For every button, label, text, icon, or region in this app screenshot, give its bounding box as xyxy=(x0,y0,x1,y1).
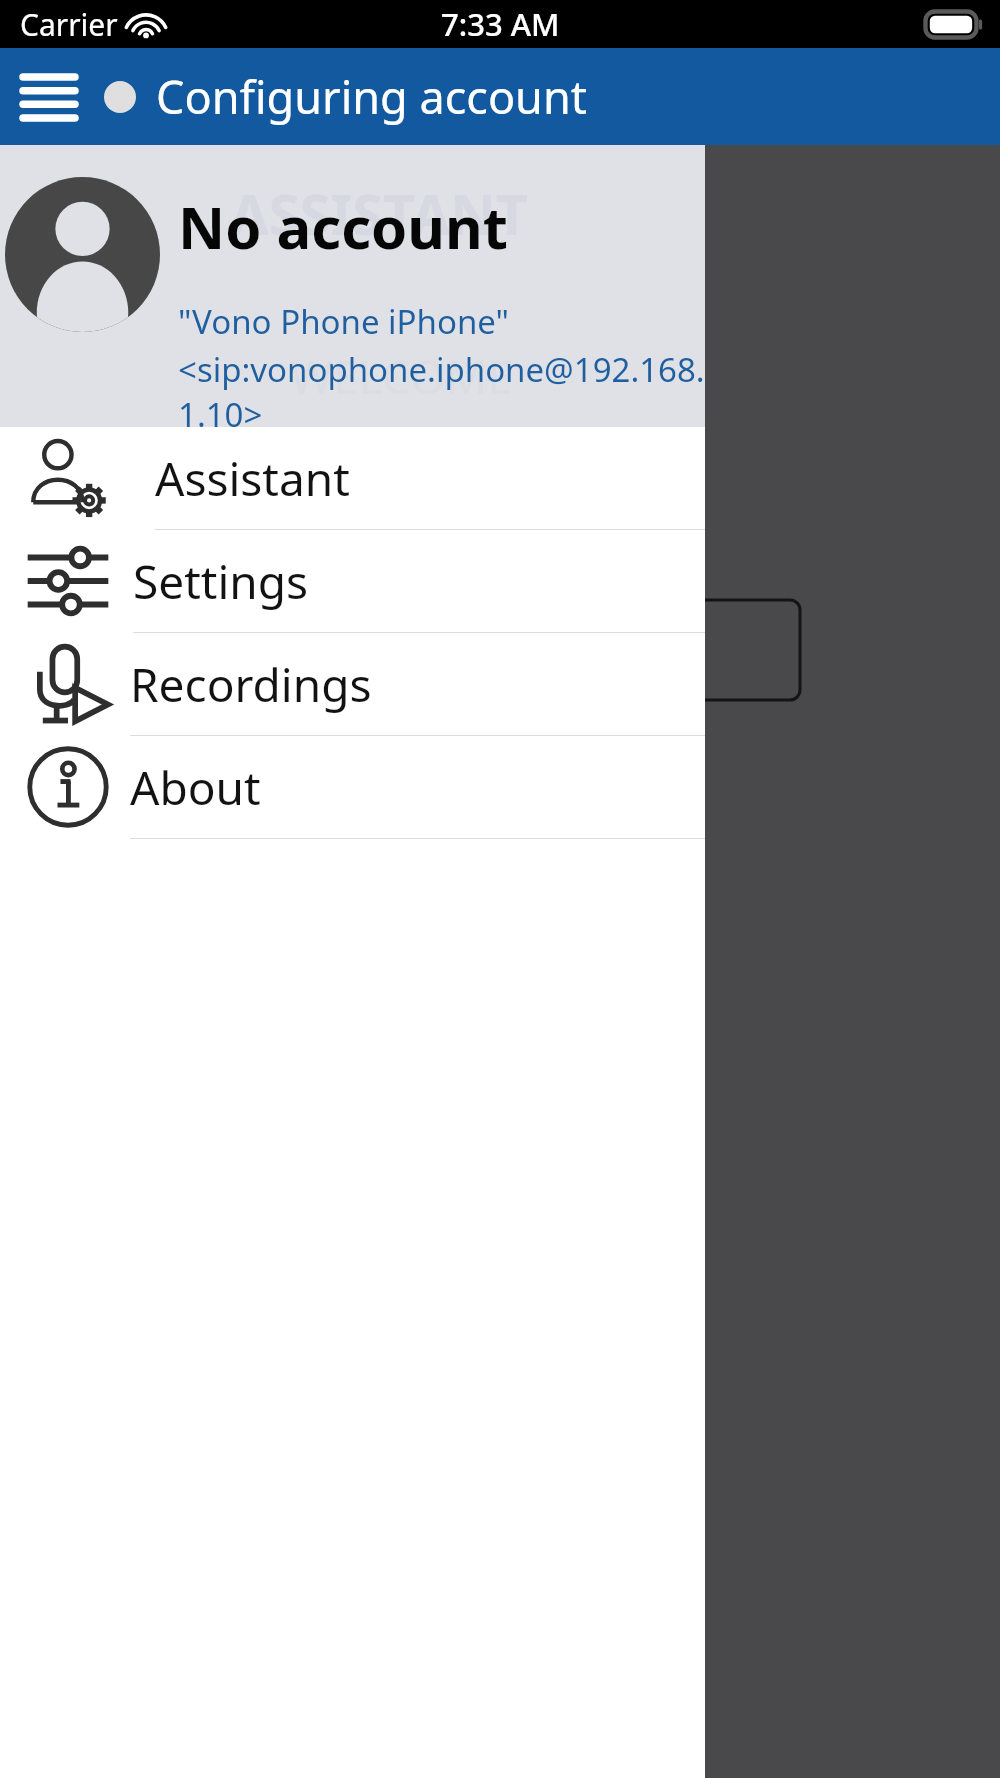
staticText: Tap assistant below to use xyxy=(190,425,559,466)
button[interactable]: Open navigation menu xyxy=(14,62,84,132)
staticText: Recordings xyxy=(130,653,372,716)
staticText: Assistant xyxy=(155,447,350,510)
staticText: <sip:vonophone.iphone@192.168.1.10> xyxy=(178,347,705,427)
staticText: ASSISTANT xyxy=(230,175,529,251)
staticText: About xyxy=(130,756,261,819)
staticText: Configuring account xyxy=(156,66,587,127)
staticText: Settings xyxy=(133,550,309,613)
staticText: WELCOME xyxy=(290,345,513,408)
staticText: WELCOME xyxy=(290,345,513,408)
staticText: No account xyxy=(178,187,508,266)
staticText: Carrier xyxy=(20,4,118,45)
button[interactable]: Settings xyxy=(0,530,705,633)
button[interactable]: About xyxy=(0,736,705,839)
staticText: "Vono Phone iPhone" xyxy=(178,299,510,344)
staticText: ASSISTANT xyxy=(230,175,529,251)
staticText: 7:33 AM xyxy=(441,3,560,45)
button[interactable]: Recordings xyxy=(0,633,705,736)
button[interactable]: Assistant xyxy=(0,427,705,530)
